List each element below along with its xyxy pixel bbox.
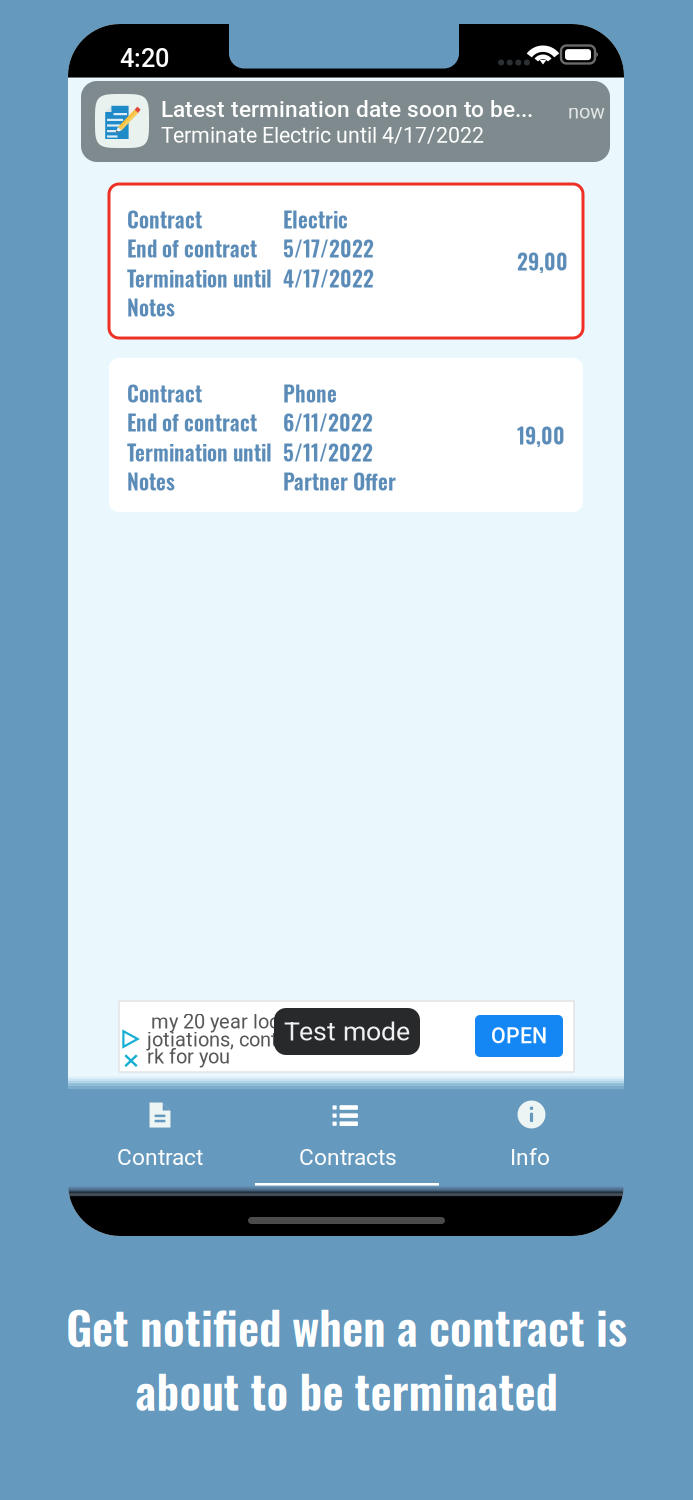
staticText: 5/17/2022 xyxy=(283,232,374,264)
button[interactable]: Contract xyxy=(68,1092,253,1190)
staticText: OPEN xyxy=(491,1023,547,1048)
staticText: 6/11/2022 xyxy=(283,406,373,438)
staticText: Contracts xyxy=(299,1144,397,1171)
staticText: Phone xyxy=(283,377,337,409)
staticText: Partner Offer xyxy=(283,465,396,497)
staticText: 5/11/2022 xyxy=(283,436,373,468)
staticText: End of contract xyxy=(127,406,257,438)
staticText: rk for you xyxy=(147,1045,230,1068)
staticText: Termination until xyxy=(127,436,272,468)
button[interactable]: Contract xyxy=(109,184,583,338)
staticText: Info xyxy=(510,1144,550,1171)
staticText: jotiations, contracts and xyxy=(147,1028,360,1051)
staticText: 29,00 xyxy=(517,245,568,277)
staticText: Terminate Electric until 4/17/2022 xyxy=(161,123,484,148)
staticText: about to be terminated xyxy=(135,1356,557,1424)
staticText: now xyxy=(568,100,605,123)
button[interactable]: OPEN xyxy=(475,1015,563,1057)
button[interactable]: Contracts xyxy=(253,1092,438,1190)
staticText: End of contract xyxy=(127,232,257,264)
staticText: Get notified when a contract is xyxy=(66,1292,627,1360)
staticText: Contract xyxy=(117,1144,203,1171)
staticText: Test mode xyxy=(284,1016,410,1047)
staticText: 19,00 xyxy=(517,419,565,451)
staticText: Notes xyxy=(127,291,175,323)
button[interactable]: Contract xyxy=(109,358,583,512)
staticText: Electric xyxy=(283,203,348,235)
staticText: Contract xyxy=(127,203,202,235)
staticText: my 20 year local xyxy=(151,1010,295,1033)
staticText: Notes xyxy=(127,465,175,497)
button[interactable]: Info xyxy=(439,1092,624,1190)
staticText: 4:20 xyxy=(120,43,169,73)
staticText: Contract xyxy=(127,377,202,409)
staticText: 4/17/2022 xyxy=(283,262,374,294)
staticText: Termination until xyxy=(127,262,272,294)
staticText: Latest termination date soon to be... xyxy=(161,96,533,123)
button[interactable]: Latest termination date soon to be... xyxy=(81,81,610,162)
